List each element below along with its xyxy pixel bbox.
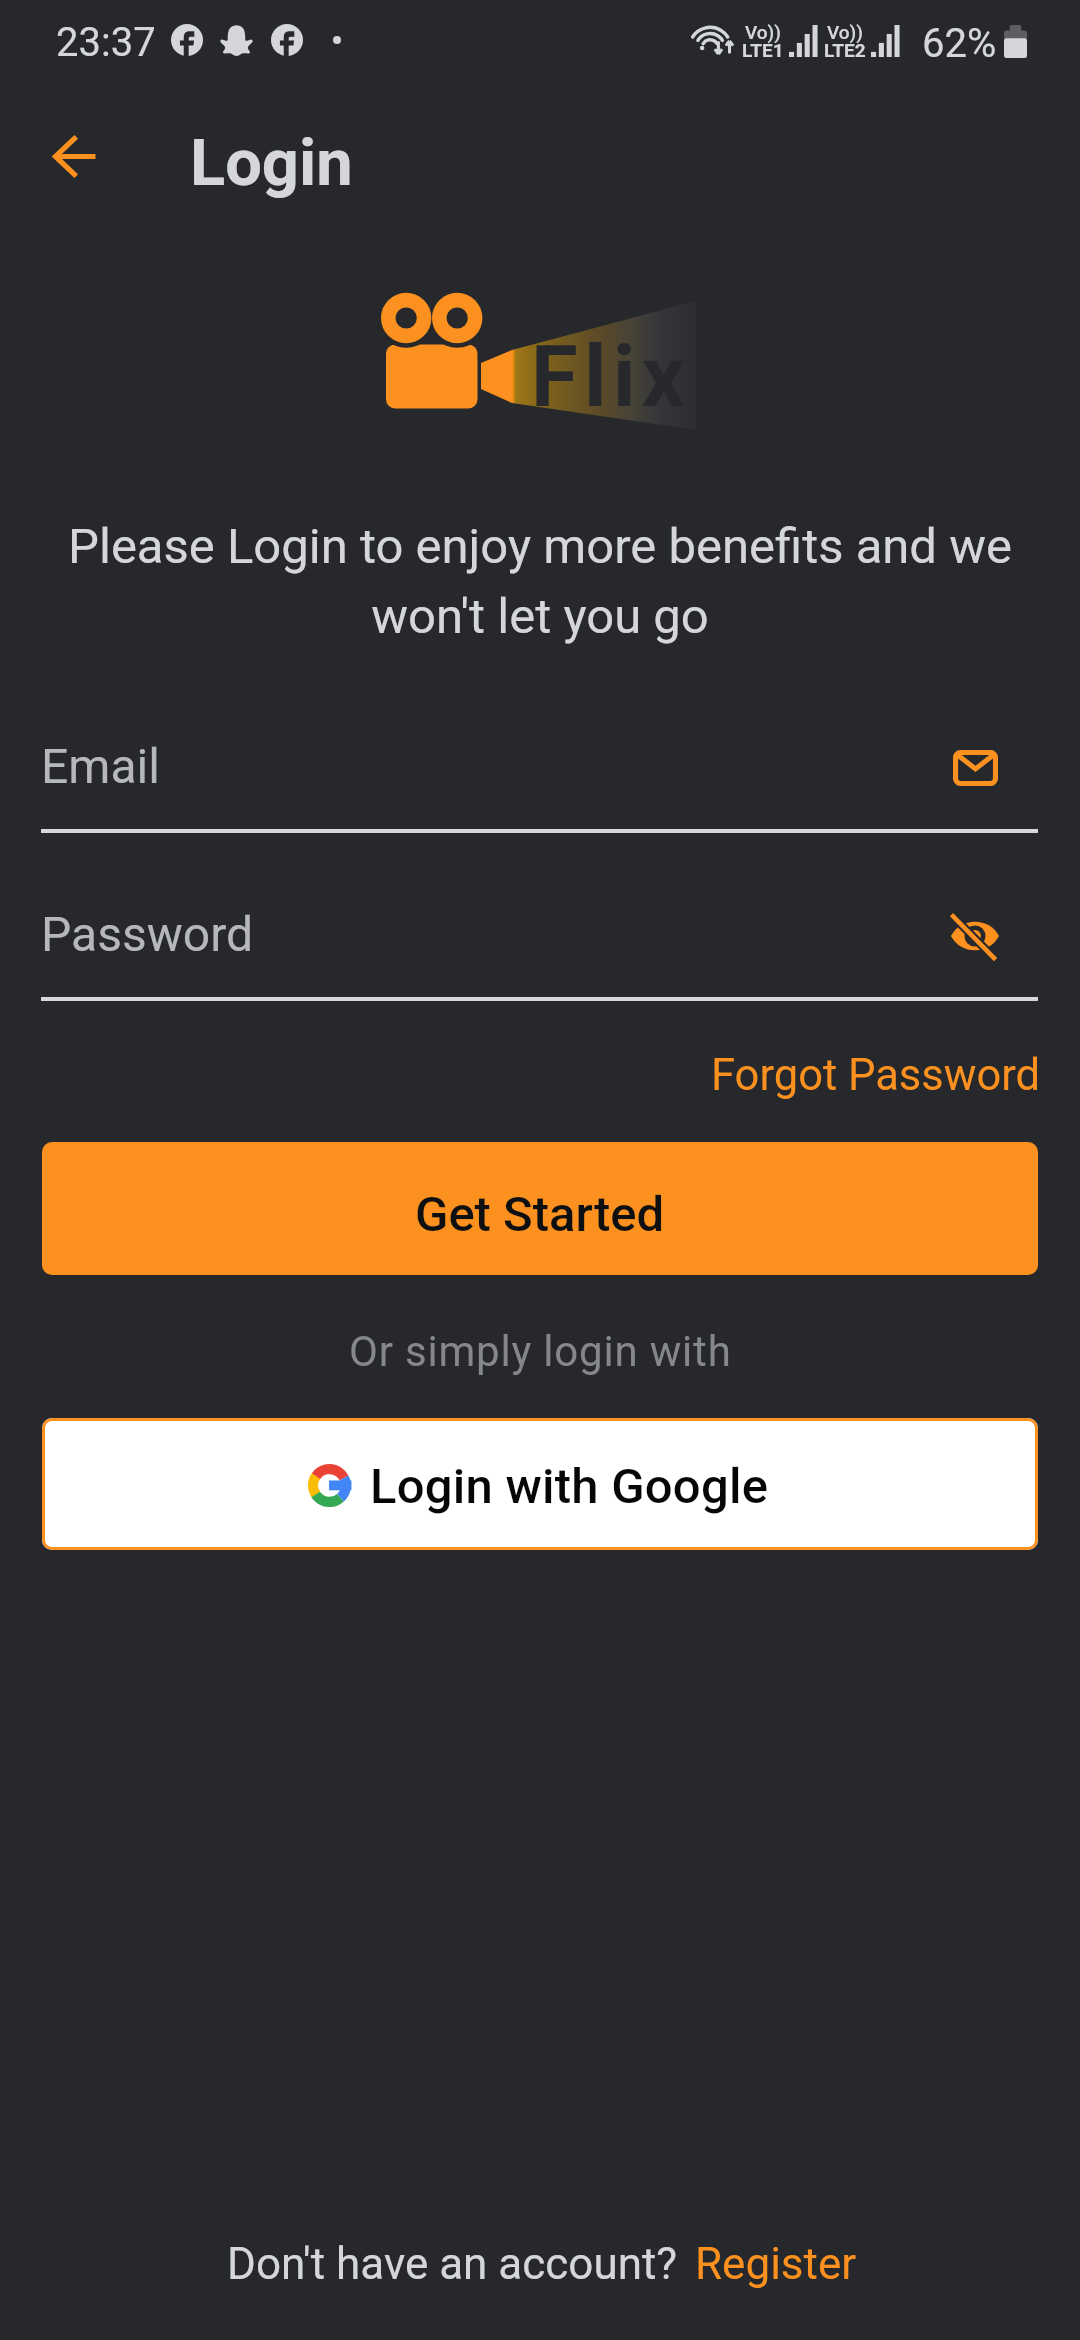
staticText: Register bbox=[695, 2238, 857, 2290]
staticText: Login with Google bbox=[370, 1458, 769, 1515]
button[interactable]: Register bbox=[678, 2230, 868, 2298]
button[interactable]: Forgot Password bbox=[600, 1034, 1038, 1112]
staticText: 23:37 bbox=[56, 19, 156, 66]
button[interactable]: Login with Google bbox=[42, 1418, 1038, 1550]
button[interactable]: Get Started bbox=[42, 1142, 1038, 1275]
button[interactable]: Show password bbox=[920, 886, 1030, 996]
staticText: Don't have an account? bbox=[227, 2238, 678, 2290]
staticText: Flix bbox=[531, 327, 692, 427]
staticText: Vo)) bbox=[827, 21, 863, 43]
staticText: LTE1 bbox=[742, 39, 784, 61]
staticText: Please Login to enjoy more benefits and … bbox=[52, 518, 1028, 645]
staticText: 62% bbox=[922, 20, 997, 67]
staticText: Forgot Password bbox=[711, 1050, 1041, 1101]
button[interactable]: Email bbox=[920, 718, 1030, 828]
button[interactable]: Password bbox=[0, 886, 1080, 1000]
button[interactable]: Back bbox=[30, 112, 118, 200]
staticText: Get Started bbox=[415, 1186, 665, 1243]
staticText: Or simply login with bbox=[349, 1327, 732, 1376]
staticText: Password bbox=[41, 906, 254, 962]
staticText: LTE2 bbox=[824, 39, 866, 61]
staticText: Vo)) bbox=[745, 21, 781, 43]
staticText: Email bbox=[41, 738, 160, 794]
button[interactable]: Email bbox=[0, 718, 1080, 832]
staticText: Login bbox=[190, 125, 353, 201]
